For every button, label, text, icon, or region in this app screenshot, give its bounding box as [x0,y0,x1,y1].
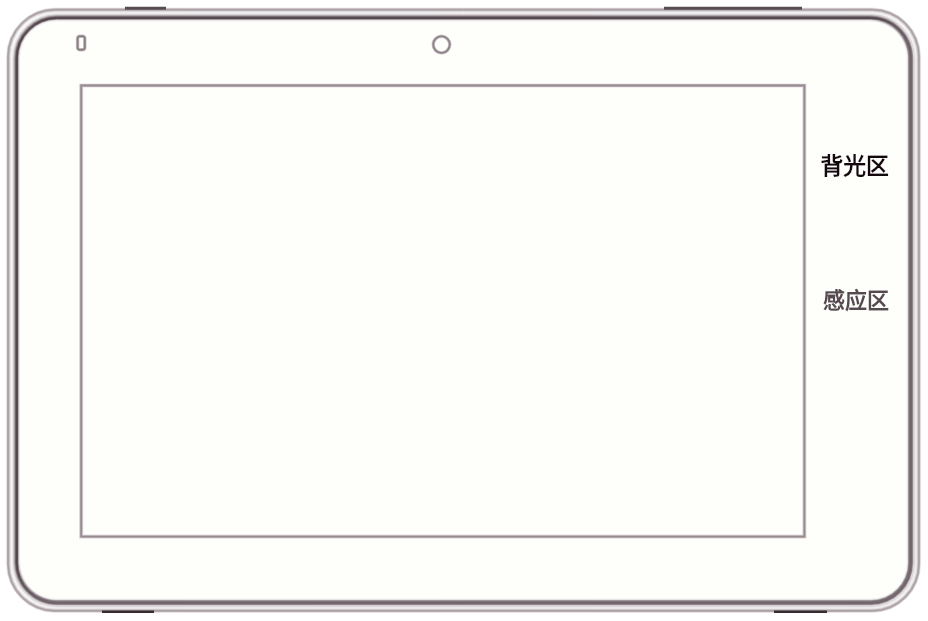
button[interactable]: 背光区 [818,146,892,176]
button[interactable]: Front camera [432,35,452,55]
button[interactable]: 感应区 [820,281,894,311]
button[interactable]: Proximity sensor [76,35,88,51]
button[interactable]: 显示区 Display area [81,85,804,536]
